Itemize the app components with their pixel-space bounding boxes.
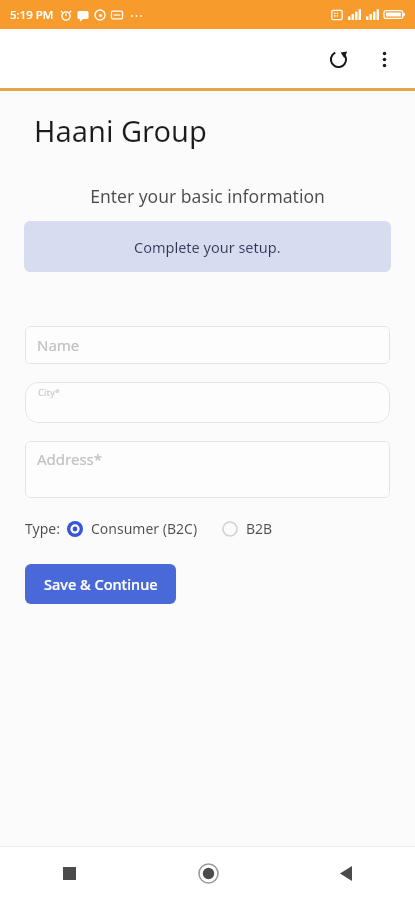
staticText: Complete your setup. <box>134 237 281 257</box>
button[interactable]: Consumer (B2C) <box>67 519 198 538</box>
staticText: Type: <box>25 519 60 538</box>
button[interactable]: Home <box>139 847 277 900</box>
button[interactable]: B2B <box>222 519 273 538</box>
staticText: Save & Continue <box>44 574 158 594</box>
staticText: City* <box>38 386 60 399</box>
staticText: 5:19 PM <box>10 7 54 23</box>
button[interactable]: Refresh <box>315 36 361 82</box>
button[interactable]: Name <box>25 326 390 364</box>
button[interactable]: Complete your setup. <box>24 221 391 272</box>
staticText: Enter your basic information <box>0 184 415 208</box>
staticText: Haani Group <box>34 111 207 150</box>
button[interactable]: More options <box>361 36 407 82</box>
staticText: Name <box>37 335 80 355</box>
button[interactable]: Save & Continue <box>25 564 176 604</box>
staticText: Address* <box>37 449 103 469</box>
button[interactable]: Recent apps <box>0 847 139 900</box>
button[interactable]: Back <box>277 847 415 900</box>
staticText: Consumer (B2C) <box>91 519 198 538</box>
button[interactable]: City* <box>25 382 390 423</box>
staticText: B2B <box>246 519 273 538</box>
button[interactable]: Address* <box>25 441 390 498</box>
